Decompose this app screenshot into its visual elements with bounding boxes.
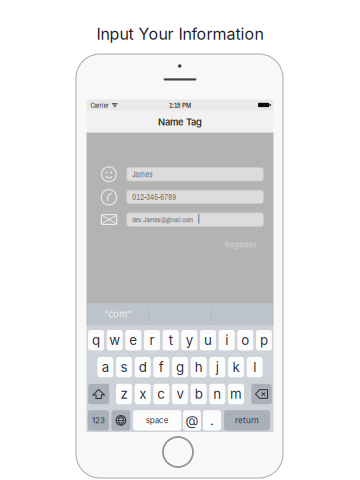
button[interactable]: e — [0, 0, 360, 480]
staticText: l — [253, 359, 256, 375]
staticText: o — [241, 332, 249, 348]
button[interactable]: t — [0, 0, 360, 480]
staticText: @ — [185, 412, 198, 428]
staticText: . — [210, 412, 214, 428]
staticText: j — [216, 359, 219, 375]
button[interactable]: return — [0, 0, 360, 480]
staticText: g — [176, 359, 184, 375]
button[interactable]: u — [0, 0, 360, 480]
button[interactable]: k — [0, 0, 360, 480]
button[interactable]: Register — [0, 0, 360, 480]
staticText: w — [109, 332, 120, 348]
button[interactable]: w — [0, 0, 360, 480]
staticText: Register — [225, 240, 257, 249]
button[interactable]: j — [0, 0, 360, 480]
staticText: h — [195, 359, 203, 375]
button[interactable]: p — [0, 0, 360, 480]
button[interactable]: 123 — [0, 0, 360, 480]
staticText: s — [120, 359, 127, 375]
button[interactable]: h — [0, 0, 360, 480]
button[interactable]: d — [0, 0, 360, 480]
button[interactable]: i — [0, 0, 360, 480]
button[interactable]: Shift — [0, 0, 360, 480]
button[interactable]: x — [0, 0, 360, 480]
staticText: dev.James@gmail.com — [132, 215, 193, 225]
staticText: k — [232, 359, 239, 375]
button[interactable]: space — [0, 0, 360, 480]
staticText: n — [213, 386, 221, 402]
staticText: t — [169, 332, 173, 348]
button[interactable]: n — [0, 0, 360, 480]
staticText: d — [139, 359, 147, 375]
button[interactable]: s — [0, 0, 360, 480]
button[interactable]: f — [0, 0, 360, 480]
button[interactable]: a — [0, 0, 360, 480]
staticText: q — [92, 332, 100, 348]
button[interactable]: @ — [0, 0, 360, 480]
button[interactable]: 012-345-6789 — [0, 0, 360, 480]
staticText: v — [176, 386, 183, 402]
button[interactable]: “com” — [0, 0, 360, 480]
staticText: James — [132, 169, 152, 180]
button[interactable]: c — [0, 0, 360, 480]
staticText: Carrier — [91, 100, 109, 110]
staticText: x — [139, 386, 146, 402]
staticText: return — [235, 416, 259, 425]
button[interactable]: James — [0, 0, 360, 480]
staticText: a — [102, 359, 109, 375]
staticText: space — [146, 416, 169, 425]
button[interactable]: . — [0, 0, 360, 480]
staticText: 012-345-6789 — [132, 191, 176, 202]
button[interactable]: g — [0, 0, 360, 480]
button[interactable]: q — [0, 0, 360, 480]
button[interactable]: m — [0, 0, 360, 480]
staticText: i — [225, 332, 228, 348]
button[interactable]: r — [0, 0, 360, 480]
staticText: b — [195, 386, 203, 402]
button[interactable]: Next keyboard — [0, 0, 360, 480]
staticText: u — [204, 332, 212, 348]
staticText: 123 — [92, 416, 105, 425]
button[interactable]: b — [0, 0, 360, 480]
button[interactable]: o — [0, 0, 360, 480]
staticText: y — [186, 332, 193, 348]
staticText: 1:15 PM — [169, 100, 191, 110]
staticText: p — [260, 332, 268, 348]
staticText: Input Your Information — [96, 24, 263, 44]
button[interactable]: dev.James@gmail.com — [0, 0, 360, 480]
button[interactable]: v — [0, 0, 360, 480]
staticText: Name Tag — [158, 116, 202, 128]
staticText: e — [129, 332, 137, 348]
staticText: z — [120, 386, 127, 402]
staticText: m — [230, 386, 242, 402]
button[interactable]: y — [0, 0, 360, 480]
button[interactable]: Delete — [0, 0, 360, 480]
staticText: r — [149, 332, 154, 348]
button[interactable]: z — [0, 0, 360, 480]
staticText: f — [159, 359, 164, 375]
staticText: c — [157, 386, 165, 402]
staticText: “com” — [104, 309, 131, 320]
button[interactable]: l — [0, 0, 360, 480]
